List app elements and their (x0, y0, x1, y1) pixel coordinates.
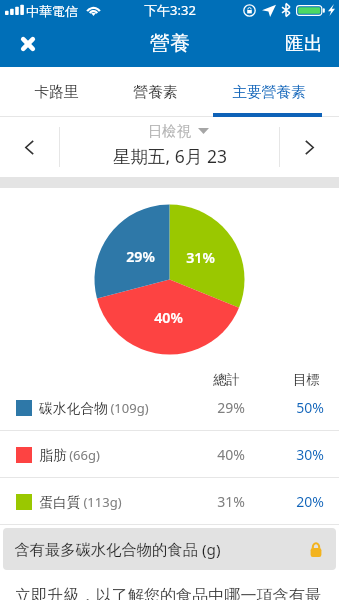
staticText: 50% (296, 398, 324, 417)
staticText: 卡路里 (34, 83, 79, 102)
staticText: 脂肪 (39, 447, 67, 464)
button[interactable]: 匯出 (271, 22, 339, 66)
staticText: 日檢視 (148, 122, 191, 140)
staticText: 含有最多碳水化合物的食品 (g) (14, 539, 221, 560)
staticText: (113g) (83, 493, 122, 511)
staticText: 40% (154, 308, 183, 327)
staticText: (109g) (110, 399, 149, 417)
staticText: 主要營養素 (232, 83, 306, 102)
staticText: 總計 (213, 371, 240, 388)
button[interactable]: 蛋白質 (0, 478, 339, 525)
staticText: 目標 (293, 371, 320, 388)
staticText: 匯出 (285, 32, 323, 56)
staticText: 20% (296, 492, 324, 511)
staticText: 29% (217, 398, 245, 417)
staticText: 營養 (150, 31, 190, 56)
button[interactable]: Previous day (0, 117, 59, 177)
staticText: 立即升級，以了解您的食品中哪一項含有最 (15, 585, 321, 600)
staticText: 29% (126, 247, 155, 266)
button[interactable]: 碳水化合物 (0, 384, 339, 431)
button[interactable]: Close (9, 25, 47, 63)
button[interactable]: 脂肪 (0, 431, 339, 478)
staticText: 40% (217, 445, 245, 464)
staticText: 營養素 (133, 83, 178, 102)
staticText: 蛋白質 (39, 494, 81, 511)
button[interactable]: 日檢視 (60, 117, 279, 177)
button[interactable]: 主要營養素 (198, 67, 339, 117)
button[interactable]: 卡路里 (0, 67, 112, 117)
button[interactable]: 營養素 (112, 67, 198, 117)
staticText: 30% (296, 445, 324, 464)
staticText: 中華電信 (26, 3, 78, 19)
button[interactable]: Next day (280, 117, 339, 177)
button[interactable]: 含有最多碳水化合物的食品 (g) (3, 528, 336, 570)
staticText: 下午3:32 (144, 1, 196, 19)
staticText: 碳水化合物 (39, 400, 108, 417)
staticText: 31% (217, 492, 245, 511)
staticText: 31% (186, 248, 215, 267)
staticText: (66g) (69, 446, 100, 464)
staticText: 星期五, 6月 23 (113, 144, 227, 168)
